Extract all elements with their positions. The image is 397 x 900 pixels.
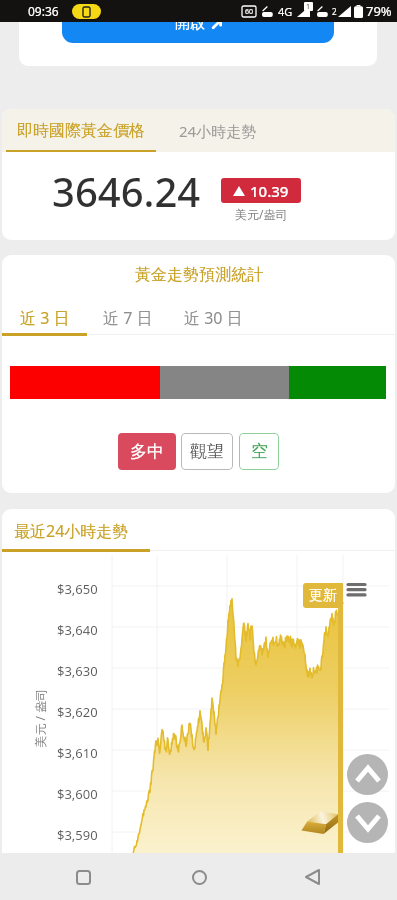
staticText: 3646.24 <box>52 164 201 218</box>
button[interactable]: 即時國際黃金價格 <box>2 109 162 152</box>
staticText: $3,640 <box>57 621 98 639</box>
button[interactable]: 空 <box>239 433 279 470</box>
staticText: 24小時走勢 <box>179 121 257 141</box>
button[interactable]: Scroll down <box>347 802 388 843</box>
button[interactable]: 近 30 日 <box>168 301 258 334</box>
staticText: 2 <box>332 6 337 17</box>
button[interactable]: 近 7 日 <box>87 301 168 334</box>
button[interactable]: Back <box>300 865 324 889</box>
staticText: 4G <box>278 4 293 19</box>
staticText: 開啟 <box>175 22 205 33</box>
staticText: $3,630 <box>57 662 98 680</box>
staticText: 近 3 日 <box>20 307 70 329</box>
staticText: 空 <box>251 441 268 462</box>
staticText: 1 <box>306 2 311 11</box>
button[interactable]: 多中 <box>118 433 176 470</box>
staticText: $3,590 <box>57 826 98 844</box>
button[interactable]: Scroll up <box>347 754 388 795</box>
staticText: $3,610 <box>57 744 98 762</box>
staticText: 60 <box>245 7 254 17</box>
button[interactable]: Recent apps <box>71 865 95 889</box>
staticText: 即時國際黃金價格 <box>17 121 145 141</box>
staticText: 更新 <box>309 587 337 605</box>
button[interactable]: 最近24小時走勢 <box>14 520 129 542</box>
staticText: 黃金走勢預測統計 <box>135 265 263 285</box>
staticText: 觀望 <box>190 441 224 462</box>
button[interactable]: Home <box>187 865 211 889</box>
staticText: 美元 / 盎司 <box>31 688 47 747</box>
staticText: 10.39 <box>250 181 289 201</box>
staticText: $3,650 <box>57 580 98 598</box>
staticText: $3,620 <box>57 703 98 721</box>
staticText: 09:36 <box>28 3 59 19</box>
staticText: 近 7 日 <box>103 307 153 329</box>
staticText: 多中 <box>130 441 164 462</box>
staticText: 近 30 日 <box>184 307 243 329</box>
staticText: $3,600 <box>57 785 98 803</box>
staticText: 79% <box>366 2 392 20</box>
button[interactable]: 更新 <box>303 583 343 608</box>
staticText: 美元/盎司 <box>235 206 288 222</box>
button[interactable]: 觀望 <box>181 433 233 470</box>
button[interactable]: 24小時走勢 <box>162 109 292 152</box>
button[interactable]: 近 3 日 <box>2 301 87 334</box>
button[interactable]: 開啟 <box>62 22 334 43</box>
button[interactable]: Menu <box>343 577 369 603</box>
